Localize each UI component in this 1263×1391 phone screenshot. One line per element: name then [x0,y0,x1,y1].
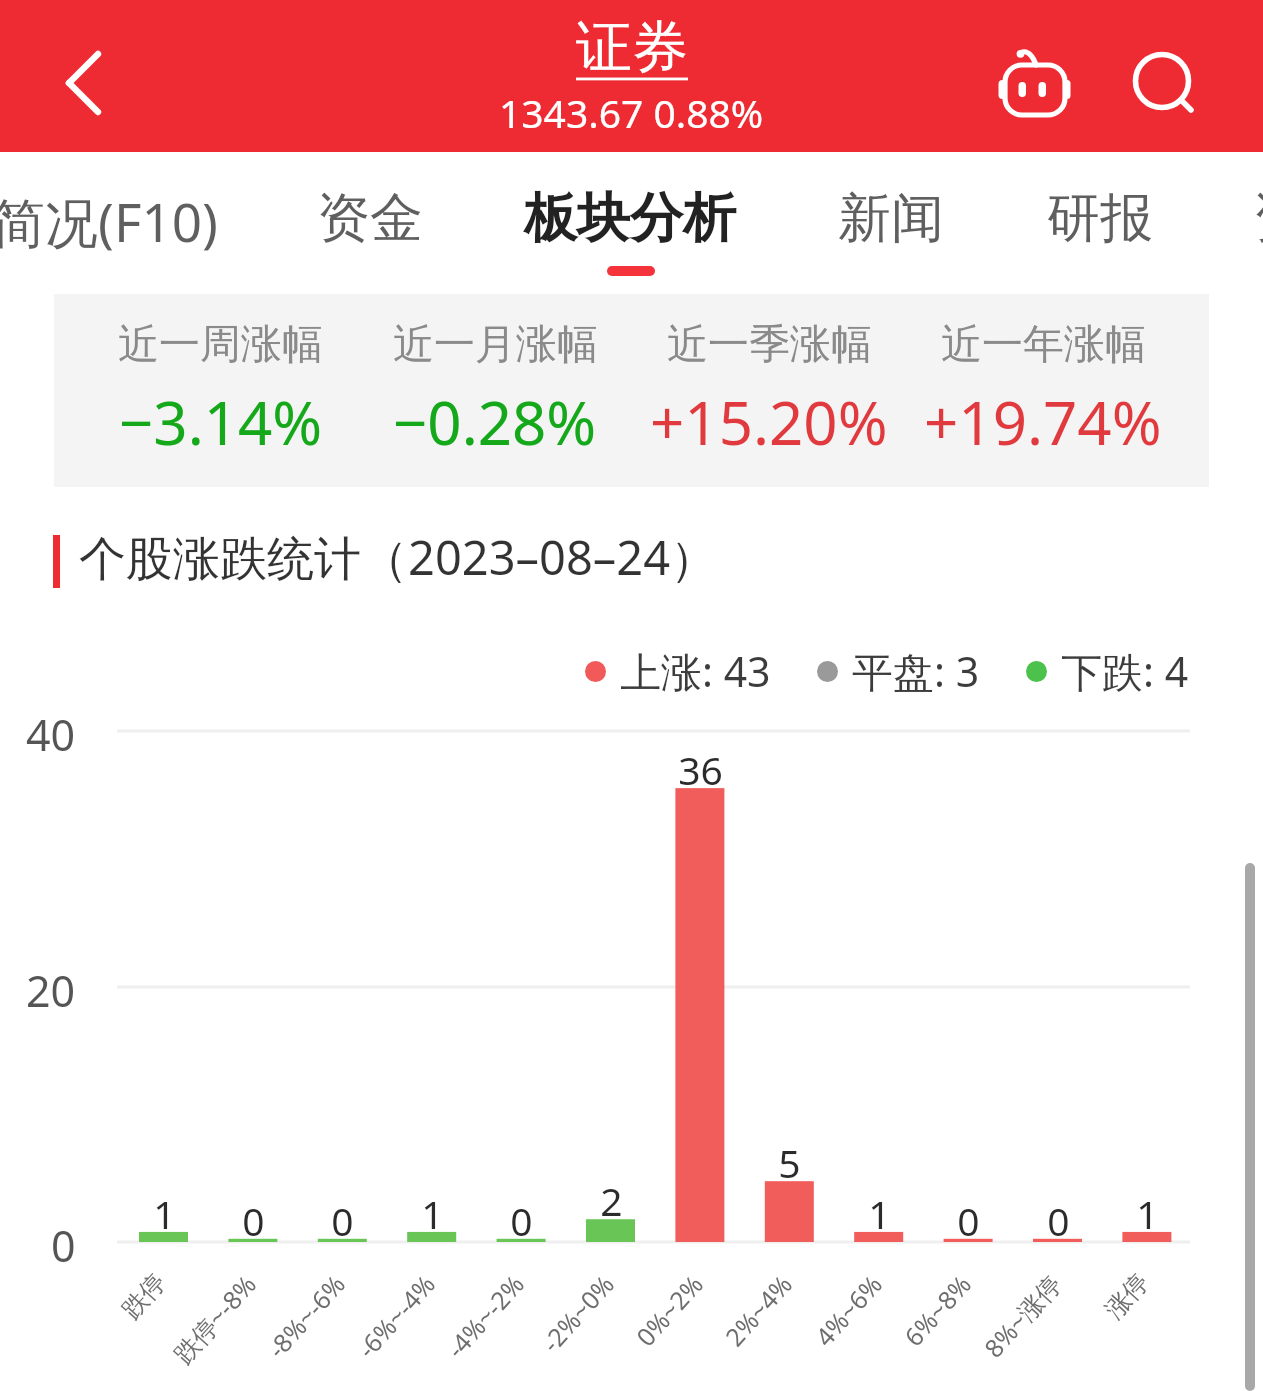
staticText: 1 [868,1187,891,1240]
button[interactable]: 研报 [1013,152,1119,297]
staticText: -2%~0% [534,1267,621,1359]
button[interactable]: 下跌: 4 [1026,643,1189,699]
staticText: 0 [1047,1194,1070,1247]
button[interactable]: 资金流向 [1219,152,1263,297]
staticText: 近一季涨幅 [667,319,872,371]
staticText: 6%~8% [896,1267,978,1353]
staticText: 0 [510,1194,533,1247]
staticText: 板块分析 [524,185,736,252]
button[interactable]: 近一年涨幅 [906,294,1180,487]
button[interactable]: 新闻 [804,152,910,297]
staticText: 研报 [1047,185,1153,252]
staticText: 1 [153,1187,176,1240]
staticText: 近一周涨幅 [118,319,323,371]
staticText: 2%~4% [717,1267,799,1353]
staticText: 1 [421,1187,444,1240]
staticText: 资金 [317,185,423,252]
staticText: 证券 [576,12,688,83]
staticText: 4%~6% [807,1267,889,1353]
staticText: 0%~2% [628,1267,710,1353]
staticText: 涨停 [1098,1267,1155,1325]
staticText: 20 [26,961,76,1020]
staticText: 0 [331,1194,354,1247]
button[interactable]: AI assistant [976,10,1086,120]
staticText: 0 [957,1194,980,1247]
staticText: -4%~-2% [438,1267,531,1365]
staticText: −0.28% [393,381,597,463]
staticText: +15.20% [650,381,888,463]
button[interactable]: 近一月涨幅 [358,294,632,487]
staticText: 跌停~-8% [166,1267,263,1370]
staticText: 36 [678,743,723,796]
staticText: 40 [26,705,76,764]
button[interactable]: 板块分析 [490,152,702,297]
button[interactable]: 上涨: 43 [585,643,771,699]
button[interactable]: 简况(F10) [0,152,184,297]
button[interactable]: 平盘: 3 [817,643,980,699]
staticText: -8%~-6% [259,1267,352,1365]
button[interactable]: Search [1110,10,1220,120]
staticText: 简况(F10) [0,185,218,257]
button[interactable]: 个股涨跌统计（2023–08–24） [79,525,718,589]
button[interactable]: 近一季涨幅 [632,294,906,487]
staticText: 新闻 [838,185,944,252]
staticText: 5 [778,1136,801,1189]
staticText: 8%~涨停 [976,1267,1068,1364]
staticText: 个股涨跌统计（2023–08–24） [79,525,718,589]
staticText: 近一年涨幅 [941,319,1146,371]
button[interactable]: Back [39,39,127,127]
button[interactable]: 资金 [283,152,389,297]
staticText: 资金流向 [1253,185,1263,252]
button[interactable]: 近一周涨幅 [83,294,358,487]
staticText: 2 [600,1174,623,1227]
staticText: +19.74% [924,381,1162,463]
staticText: 下跌: 4 [1061,643,1189,699]
staticText: 跌停 [115,1267,172,1325]
staticText: 0 [242,1194,265,1247]
staticText: 平盘: 3 [852,643,980,699]
staticText: 1343.67 0.88% [499,86,764,139]
staticText: -6%~-4% [349,1267,442,1365]
staticText: 1 [1136,1187,1159,1240]
staticText: 上涨: 43 [620,643,771,699]
staticText: −3.14% [119,381,323,463]
staticText: 0 [51,1216,76,1275]
staticText: 近一月涨幅 [393,319,598,371]
